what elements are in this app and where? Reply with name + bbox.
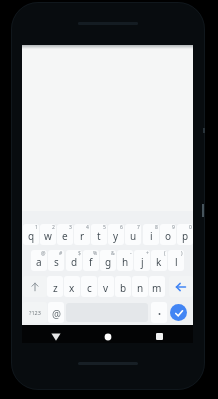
- staticText: @: [41, 250, 46, 257]
- button[interactable]: w: [40, 224, 56, 245]
- staticText: 0: [189, 224, 192, 231]
- staticText: s: [54, 255, 59, 269]
- button[interactable]: c: [81, 276, 97, 297]
- staticText: c: [87, 281, 92, 295]
- staticText: 9: [172, 224, 175, 231]
- staticText: d: [71, 255, 78, 269]
- staticText: v: [103, 281, 109, 295]
- staticText: y: [113, 229, 119, 243]
- button[interactable]: l: [168, 250, 184, 271]
- staticText: 3: [69, 224, 72, 231]
- button[interactable]: s: [48, 250, 64, 271]
- button[interactable]: u: [125, 224, 141, 245]
- staticText: i: [150, 229, 153, 243]
- button[interactable]: h: [117, 250, 133, 271]
- button[interactable]: [170, 304, 187, 321]
- button[interactable]: z: [47, 276, 63, 297]
- staticText: q: [28, 229, 35, 243]
- button[interactable]: g: [100, 250, 116, 271]
- staticText: u: [130, 229, 137, 243]
- staticText: r: [80, 229, 85, 243]
- staticText: &: [111, 250, 115, 257]
- staticText: h: [122, 255, 129, 269]
- button[interactable]: r: [74, 224, 90, 245]
- button[interactable]: e: [57, 224, 73, 245]
- staticText: w: [44, 229, 52, 243]
- staticText: 5: [103, 224, 106, 231]
- staticText: n: [137, 281, 144, 295]
- staticText: p: [182, 229, 189, 243]
- staticText: l: [175, 255, 178, 269]
- staticText: 2: [52, 224, 55, 231]
- button[interactable]: [101, 330, 114, 343]
- button[interactable]: y: [108, 224, 124, 245]
- staticText: b: [120, 281, 127, 295]
- staticText: e: [62, 229, 68, 243]
- staticText: t: [97, 229, 101, 243]
- staticText: z: [53, 281, 58, 295]
- staticText: 8: [155, 224, 158, 231]
- button[interactable]: i: [143, 224, 159, 245]
- staticText: (: [164, 250, 166, 257]
- button[interactable]: [49, 331, 63, 343]
- staticText: 1: [35, 224, 38, 231]
- button[interactable]: d: [66, 250, 82, 271]
- staticText: $: [78, 250, 81, 257]
- button[interactable]: n: [132, 276, 148, 297]
- staticText: 6: [120, 224, 123, 231]
- button[interactable]: [23, 276, 47, 297]
- button[interactable]: [169, 276, 193, 297]
- staticText: x: [69, 281, 75, 295]
- staticText: m: [152, 281, 162, 295]
- staticText: ?123: [29, 309, 41, 316]
- button[interactable]: [151, 302, 167, 323]
- staticText: j: [141, 255, 144, 269]
- button[interactable]: ?123: [23, 302, 47, 323]
- staticText: @: [52, 307, 61, 321]
- staticText: k: [156, 255, 162, 269]
- button[interactable]: o: [160, 224, 176, 245]
- staticText: 7: [137, 224, 140, 231]
- staticText: o: [165, 229, 172, 243]
- staticText: 4: [86, 224, 89, 231]
- button[interactable]: [153, 330, 166, 343]
- button[interactable]: x: [64, 276, 80, 297]
- staticText: f: [89, 255, 93, 269]
- staticText: g: [105, 255, 112, 269]
- button[interactable]: v: [98, 276, 114, 297]
- button[interactable]: t: [91, 224, 107, 245]
- button[interactable]: q: [23, 224, 39, 245]
- staticText: ): [181, 250, 183, 257]
- staticText: %: [93, 250, 98, 257]
- staticText: a: [36, 255, 42, 269]
- staticText: #: [59, 250, 63, 257]
- button[interactable]: a: [31, 250, 47, 271]
- button[interactable]: f: [83, 250, 99, 271]
- button[interactable]: j: [134, 250, 150, 271]
- button[interactable]: k: [151, 250, 167, 271]
- button[interactable]: m: [149, 276, 165, 297]
- button[interactable]: b: [115, 276, 131, 297]
- staticText: +: [146, 250, 149, 257]
- staticText: -: [130, 250, 132, 257]
- button[interactable]: @: [48, 302, 64, 323]
- button[interactable]: p: [177, 224, 193, 245]
